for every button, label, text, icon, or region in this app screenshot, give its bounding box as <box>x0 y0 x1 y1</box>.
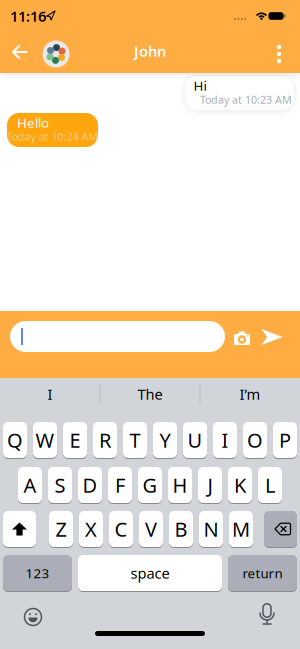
staticText: O <box>247 427 263 453</box>
staticText: X <box>85 516 97 542</box>
staticText: W <box>35 427 54 453</box>
button[interactable]: M <box>229 510 253 547</box>
staticText: F <box>115 472 125 498</box>
button[interactable]: K <box>228 466 252 503</box>
staticText: S <box>54 472 65 498</box>
button[interactable]: B <box>169 510 193 547</box>
staticText: T <box>129 427 140 453</box>
staticText: M <box>232 516 250 542</box>
button[interactable]: U <box>183 421 207 458</box>
button[interactable]: Y <box>153 421 177 458</box>
staticText: The <box>137 384 162 404</box>
button[interactable] <box>269 42 289 66</box>
staticText: V <box>145 516 157 542</box>
button[interactable]: A <box>18 466 42 503</box>
button[interactable] <box>3 510 36 547</box>
staticText: B <box>174 516 187 542</box>
staticText: U <box>187 427 202 453</box>
staticText: R <box>99 427 111 453</box>
button[interactable] <box>234 331 250 345</box>
button[interactable]: I <box>213 421 237 458</box>
staticText: D <box>82 472 97 498</box>
staticText: 123 <box>25 564 49 582</box>
button[interactable]: R <box>93 421 117 458</box>
button[interactable]: 123 <box>3 554 72 591</box>
staticText: I’m <box>239 384 260 404</box>
button[interactable]: T <box>123 421 147 458</box>
button[interactable]: I <box>5 379 95 409</box>
staticText: I <box>221 427 228 453</box>
button[interactable] <box>42 40 69 67</box>
staticText: E <box>69 427 80 453</box>
button[interactable] <box>22 606 44 628</box>
staticText: L <box>265 472 275 498</box>
staticText: G <box>142 472 157 498</box>
button[interactable]: N <box>199 510 223 547</box>
button[interactable] <box>11 45 27 59</box>
button[interactable]: space <box>78 554 222 591</box>
staticText: 11:16 <box>10 6 46 26</box>
button[interactable]: J <box>198 466 222 503</box>
staticText: J <box>207 472 212 498</box>
button[interactable]: G <box>138 466 162 503</box>
staticText: I <box>47 384 52 404</box>
button[interactable] <box>264 510 297 547</box>
staticText: Hello <box>17 114 49 131</box>
button[interactable]: P <box>273 421 297 458</box>
button[interactable] <box>261 329 282 345</box>
staticText: Z <box>55 516 66 542</box>
staticText: Today at 10:24 AM <box>6 129 98 144</box>
button[interactable]: V <box>139 510 163 547</box>
staticText: John <box>134 41 166 61</box>
button[interactable]: C <box>109 510 133 547</box>
staticText: Hi <box>193 77 206 94</box>
staticText: Q <box>7 427 23 453</box>
button[interactable]: Q <box>3 421 27 458</box>
button[interactable]: F <box>108 466 132 503</box>
staticText: H <box>172 472 187 498</box>
button[interactable]: W <box>33 421 57 458</box>
button[interactable] <box>257 603 277 627</box>
button[interactable] <box>10 321 225 352</box>
button[interactable]: O <box>243 421 267 458</box>
staticText: Y <box>159 427 170 453</box>
button[interactable]: D <box>78 466 102 503</box>
staticText: N <box>203 516 218 542</box>
staticText: return <box>242 564 282 582</box>
button[interactable]: The <box>105 379 195 409</box>
staticText: Today at 10:23 AM <box>200 92 292 107</box>
button[interactable]: return <box>228 554 297 591</box>
button[interactable]: Z <box>49 510 73 547</box>
staticText: A <box>23 472 36 498</box>
button[interactable]: X <box>79 510 103 547</box>
button[interactable]: I’m <box>205 379 295 409</box>
staticText: C <box>114 516 127 542</box>
button[interactable]: H <box>168 466 192 503</box>
staticText: space <box>130 563 169 583</box>
button[interactable]: S <box>48 466 72 503</box>
button[interactable]: E <box>63 421 87 458</box>
staticText: P <box>279 427 291 453</box>
button[interactable]: L <box>258 466 282 503</box>
staticText: K <box>234 472 246 498</box>
